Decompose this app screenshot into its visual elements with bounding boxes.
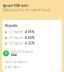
staticText: 36 month	[9, 42, 23, 45]
staticText: 4.60%	[25, 36, 34, 40]
button[interactable]: $	[2, 50, 62, 57]
staticText: $44	[11, 53, 17, 57]
staticText: Special KDB rates	[3, 4, 28, 7]
staticText: 12 month	[9, 30, 23, 34]
staticText: 4.35%	[25, 42, 34, 45]
staticText: Open an account	[5, 60, 28, 63]
staticText: 4.85%	[25, 30, 34, 34]
staticText: Interest earned	[11, 50, 33, 53]
button[interactable]: 12 month	[5, 30, 62, 34]
staticText: Learn more	[5, 65, 20, 69]
staticText: $	[5, 52, 7, 55]
staticText: 24 month	[9, 36, 23, 40]
staticText: Rates good for the next 48 hours	[3, 8, 50, 12]
button[interactable]: 36 month	[5, 42, 62, 45]
button[interactable]: 24 month	[5, 36, 62, 40]
staticText: Deposits	[5, 24, 17, 27]
